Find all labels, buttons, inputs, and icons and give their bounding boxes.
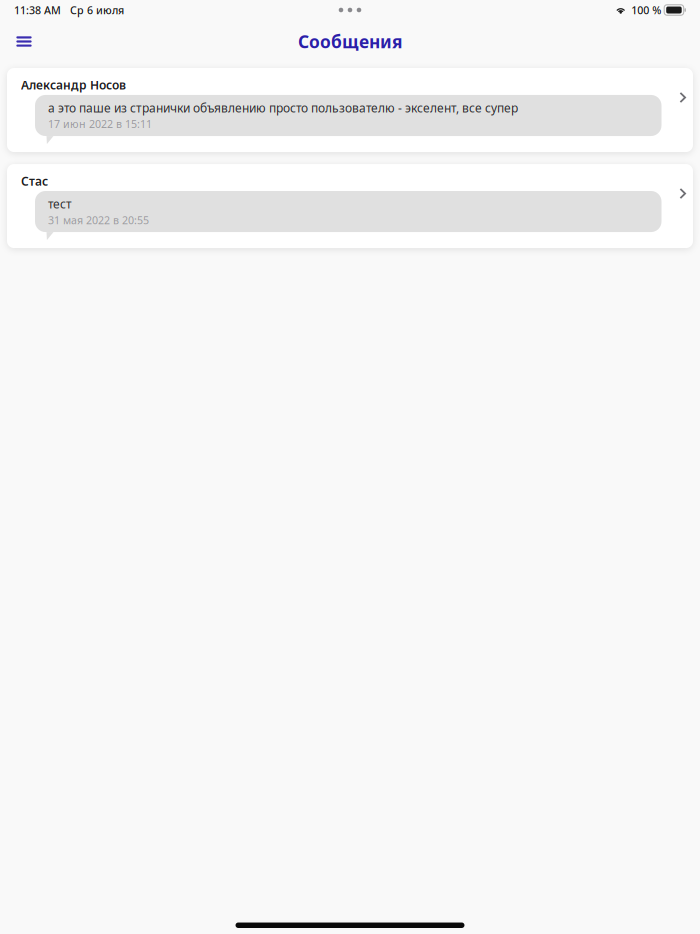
- staticText: 31 мая 2022 в 20:55: [48, 213, 149, 227]
- staticText: 100 %: [631, 3, 661, 17]
- staticText: Сообщения: [298, 30, 402, 53]
- staticText: 17 июн 2022 в 15:11: [48, 117, 152, 131]
- button[interactable]: Стас: [7, 164, 693, 248]
- staticText: тест: [48, 196, 72, 212]
- staticText: Стас: [21, 173, 48, 189]
- button[interactable]: Александр Носов: [7, 68, 693, 152]
- staticText: 11:38 AM: [14, 3, 61, 17]
- staticText: Ср 6 июля: [70, 3, 124, 17]
- staticText: Александр Носов: [21, 77, 126, 93]
- button[interactable]: Меню: [8, 22, 40, 57]
- staticText: а это паше из странички объявлению прост…: [48, 100, 518, 116]
